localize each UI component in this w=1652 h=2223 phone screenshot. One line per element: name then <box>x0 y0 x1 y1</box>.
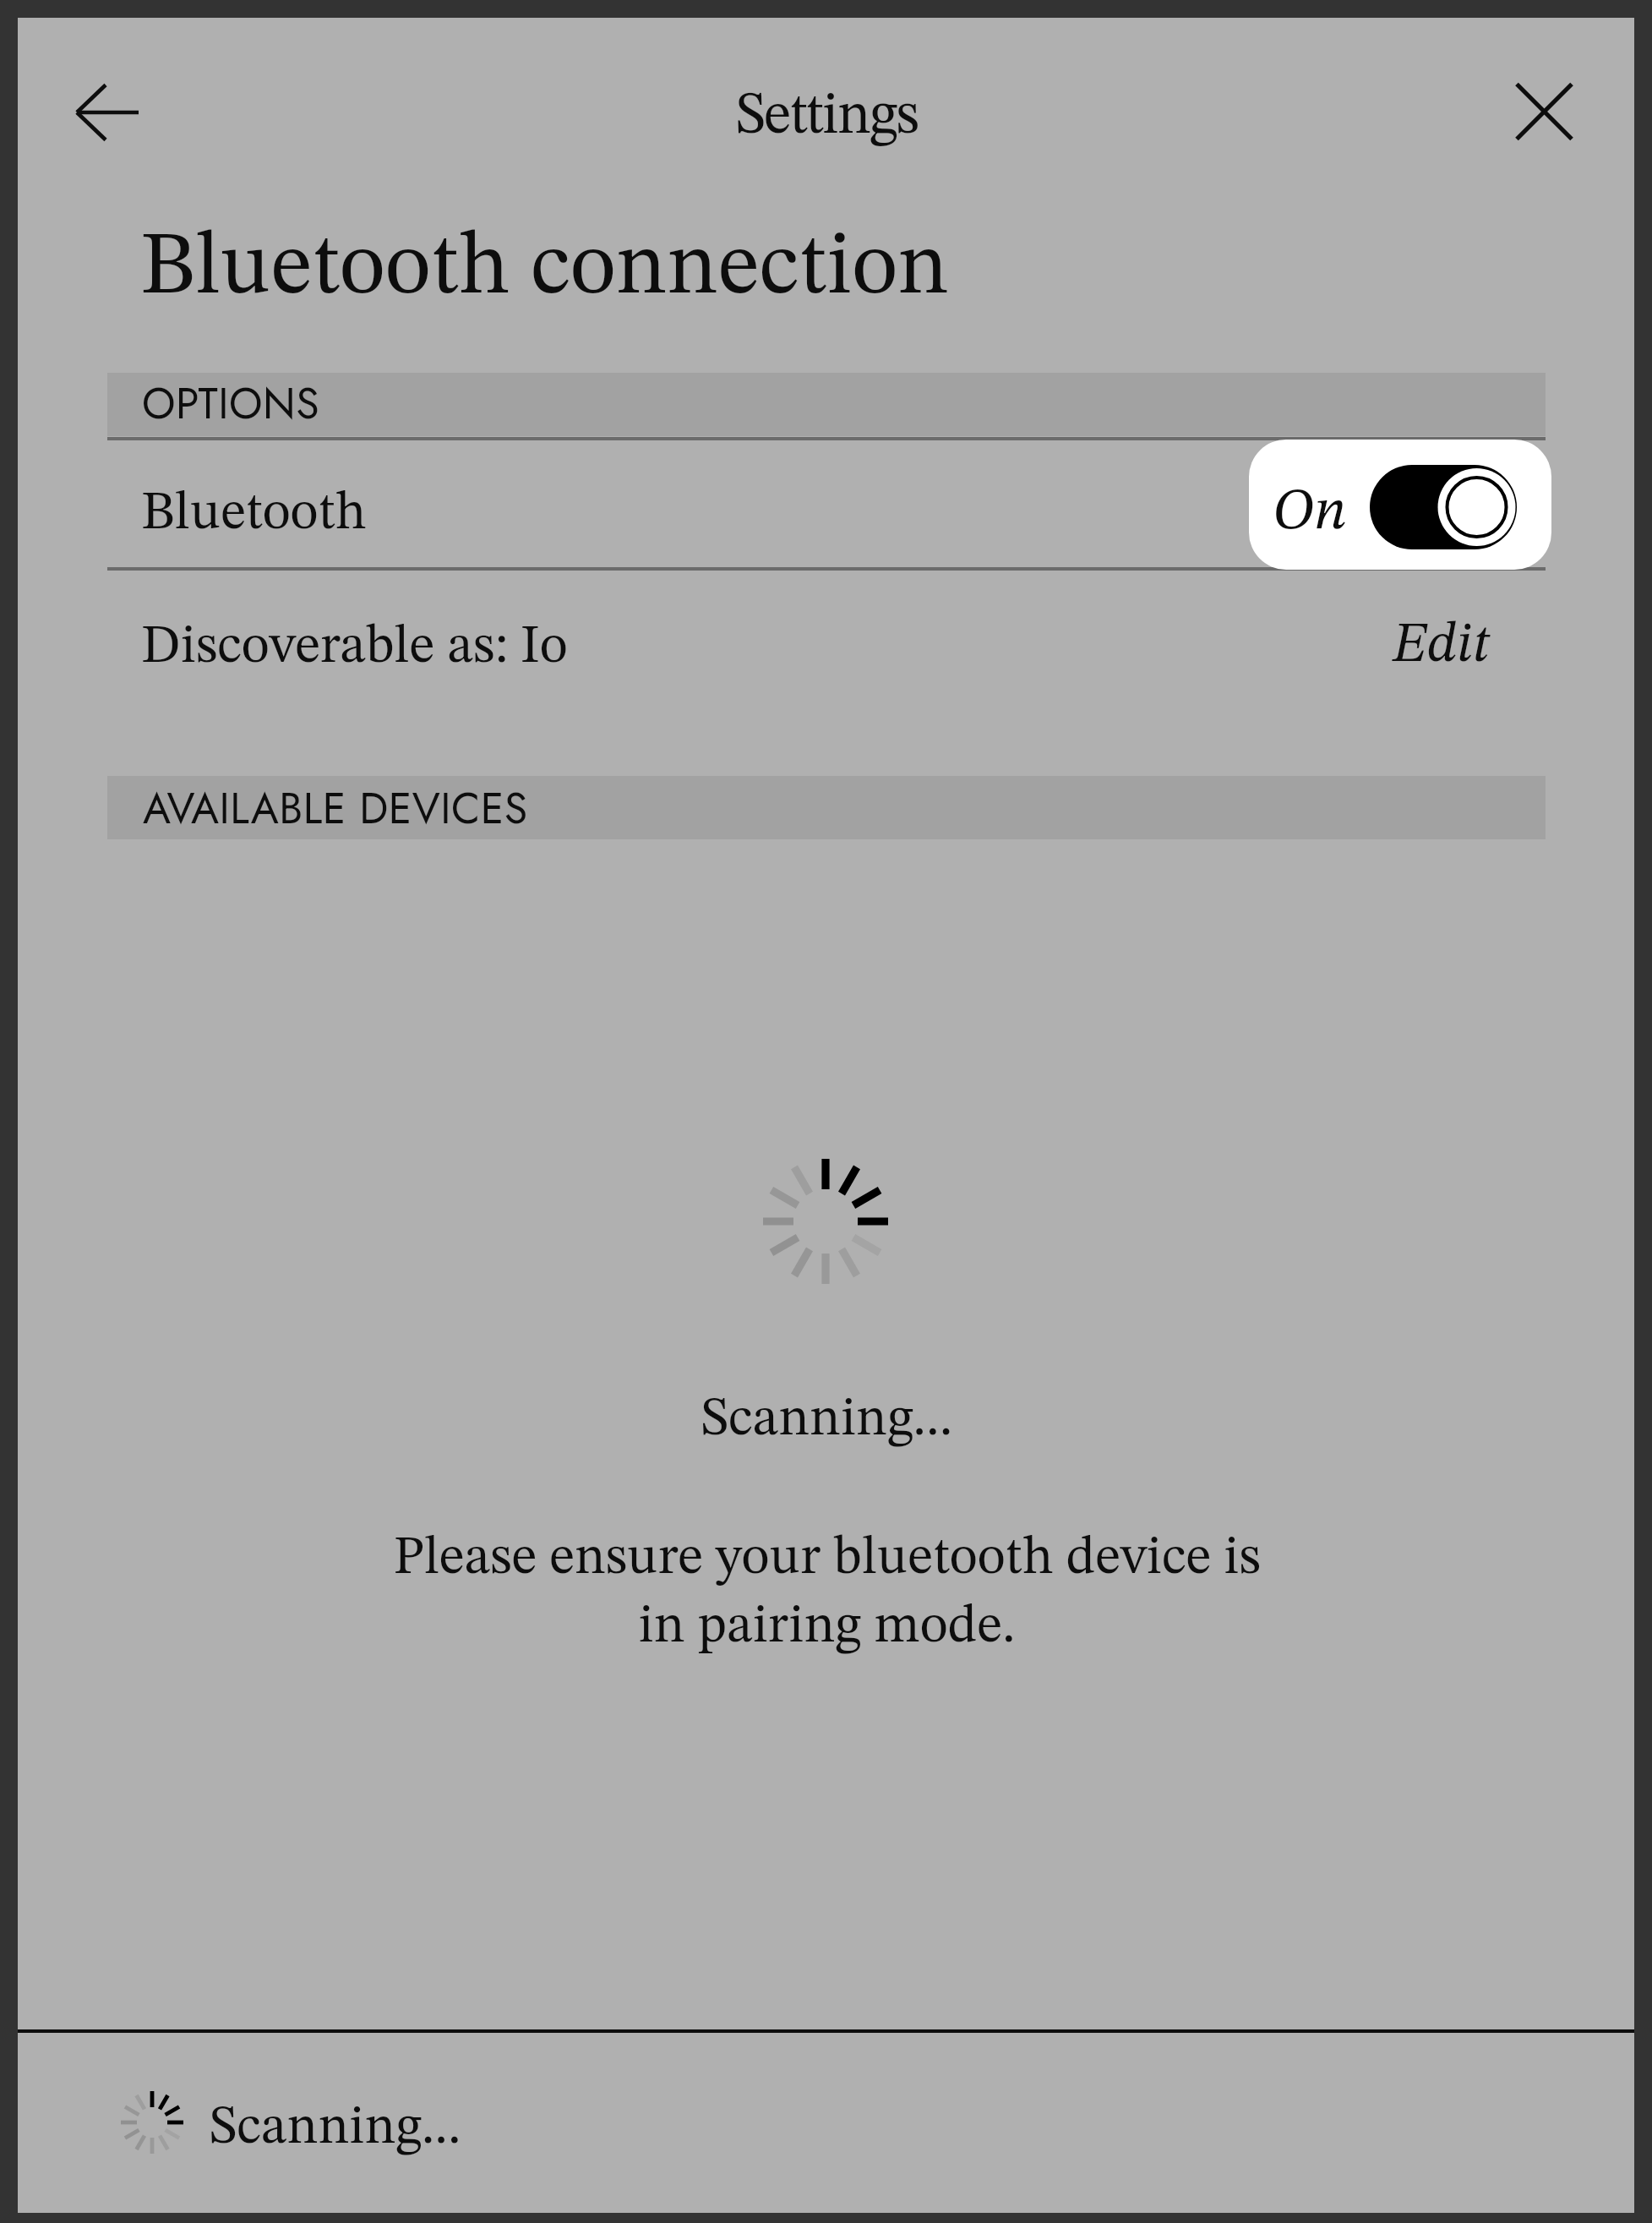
staticText: Bluetooth connection <box>140 225 949 314</box>
button[interactable]: Close <box>1502 69 1587 154</box>
button[interactable]: Edit <box>1369 602 1529 695</box>
staticText: Discoverable as: Io <box>141 620 568 675</box>
staticText: in pairing mode. <box>1 1600 1652 1654</box>
staticText: Bluetooth <box>141 487 367 541</box>
button[interactable]: Discoverable as: Io <box>18 571 1634 697</box>
staticText: On <box>1273 483 1347 542</box>
button[interactable]: Back <box>35 70 119 155</box>
button[interactable]: Bluetooth <box>18 440 1634 567</box>
staticText: AVAILABLE DEVICES <box>143 778 528 838</box>
staticText: Scanning... <box>1 1393 1652 1447</box>
staticText: Settings <box>1 88 1652 146</box>
button[interactable]: Scanning... <box>18 2033 1634 2213</box>
staticText: Please ensure your bluetooth device is <box>1 1532 1652 1586</box>
staticText: Scanning... <box>210 2101 461 2155</box>
staticText: OPTIONS <box>142 373 320 434</box>
staticText: Edit <box>1393 619 1490 675</box>
button[interactable]: Bluetooth on <box>1249 440 1551 570</box>
